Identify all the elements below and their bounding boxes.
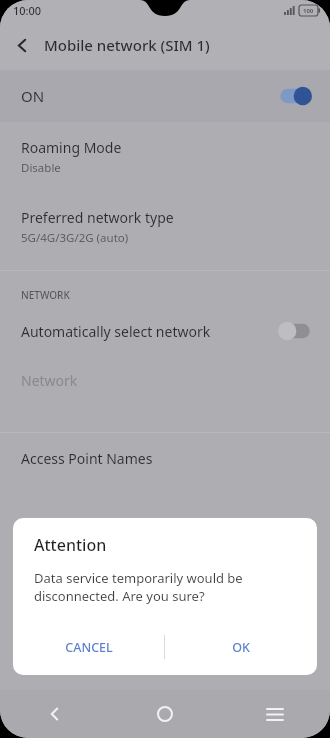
staticText: OK	[232, 639, 250, 656]
staticText: ON	[21, 86, 45, 106]
staticText: Preferred network type	[21, 208, 174, 227]
button[interactable]: Home	[110, 690, 220, 738]
staticText: NETWORK	[21, 288, 70, 302]
button[interactable]: Network	[0, 355, 330, 406]
button[interactable]: Back	[0, 690, 110, 738]
button[interactable]: Back	[0, 23, 44, 67]
staticText: Network	[21, 371, 78, 390]
staticText: Mobile network (SIM 1)	[44, 35, 210, 55]
staticText: 5G/4G/3G/2G (auto)	[21, 230, 129, 246]
staticText: Attention	[34, 534, 107, 556]
button[interactable]: CANCEL	[13, 625, 164, 669]
button[interactable]: Automatically select network	[0, 307, 330, 355]
staticText: Roaming Mode	[21, 138, 122, 157]
staticText: Automatically select network	[21, 322, 211, 341]
staticText: 100	[303, 7, 314, 15]
button[interactable]: Recent apps	[220, 690, 330, 738]
staticText: 10:00	[13, 3, 42, 18]
button[interactable]: ON	[0, 70, 330, 122]
staticText: Data service temporarily would be discon…	[34, 569, 243, 605]
button[interactable]: Access Point Names	[0, 433, 330, 484]
staticText: Disable	[21, 160, 61, 176]
staticText: CANCEL	[65, 639, 113, 656]
staticText: Access Point Names	[21, 449, 153, 468]
button[interactable]: Preferred network type	[0, 192, 330, 262]
button[interactable]: OK	[165, 625, 317, 669]
button[interactable]: Roaming Mode	[0, 122, 330, 192]
